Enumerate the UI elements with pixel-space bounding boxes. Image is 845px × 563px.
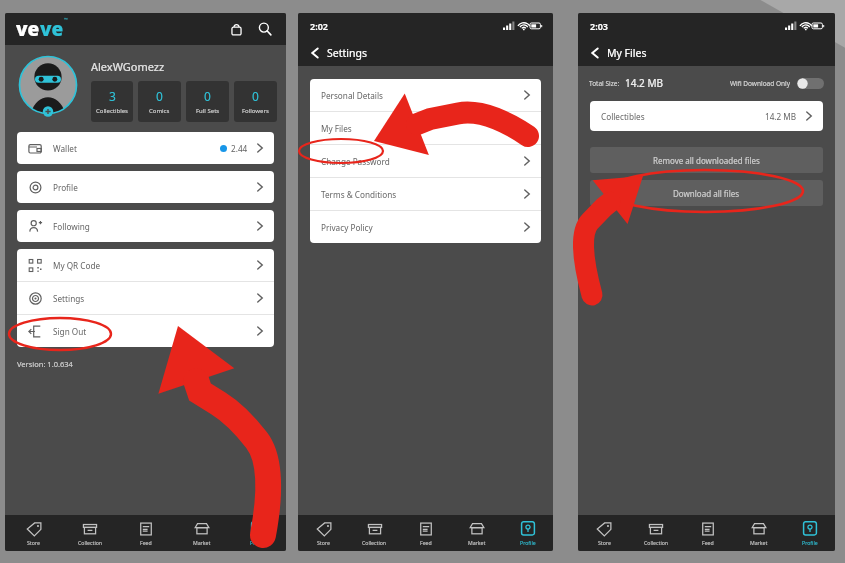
staticText: Total Size: xyxy=(589,79,620,88)
button[interactable]: Privacy Policy xyxy=(310,211,541,243)
staticText: Feed xyxy=(702,539,714,546)
staticText: Version: 1.0.634 xyxy=(17,359,73,369)
staticText: 3 xyxy=(109,88,116,104)
staticText: Profile xyxy=(250,539,266,546)
staticText: Settings xyxy=(327,46,367,60)
button[interactable]: 0 xyxy=(138,81,181,122)
staticText: Change Password xyxy=(321,156,390,167)
button[interactable]: Feed xyxy=(118,515,174,551)
staticText: Market xyxy=(193,539,211,546)
staticText: Feed xyxy=(420,539,432,546)
button[interactable]: Collection xyxy=(62,515,118,551)
staticText: My QR Code xyxy=(53,260,101,271)
staticText: Wallet xyxy=(53,143,77,154)
staticText: AlexWGomezz xyxy=(91,59,165,74)
button[interactable]: Search xyxy=(254,18,276,40)
button[interactable]: Back xyxy=(306,44,324,62)
staticText: Store xyxy=(27,539,40,546)
staticText: 0 xyxy=(156,88,163,104)
staticText: ™ xyxy=(64,16,68,22)
button[interactable]: Collection xyxy=(630,515,682,551)
button[interactable]: Profile xyxy=(502,515,553,551)
staticText: Profile xyxy=(53,182,78,193)
button[interactable]: Market xyxy=(174,515,230,551)
staticText: 2:02 xyxy=(310,20,328,32)
button[interactable]: Settings xyxy=(17,282,274,314)
button[interactable]: Following xyxy=(17,210,274,242)
staticText: Followers xyxy=(242,107,269,115)
button[interactable]: 0 xyxy=(186,81,229,122)
staticText: Market xyxy=(750,539,768,546)
button[interactable]: Market xyxy=(733,515,784,551)
staticText: Profile xyxy=(520,539,536,546)
staticText: Privacy Policy xyxy=(321,222,373,233)
staticText: 0 xyxy=(204,88,211,104)
staticText: Wifi Download Only xyxy=(730,79,791,88)
button[interactable]: Feed xyxy=(400,515,451,551)
button[interactable]: 3 xyxy=(91,81,133,122)
staticText: Terms & Conditions xyxy=(321,189,397,200)
staticText: Store xyxy=(598,539,611,546)
button[interactable]: Change Password xyxy=(310,145,541,177)
button[interactable] xyxy=(797,78,824,89)
staticText: ve xyxy=(40,16,64,42)
button[interactable]: Profile xyxy=(17,171,274,203)
button[interactable]: Download all files xyxy=(590,180,823,206)
staticText: Collection xyxy=(362,539,387,546)
staticText: Sign Out xyxy=(53,326,87,337)
button[interactable]: Collectibles xyxy=(590,101,823,131)
staticText: Settings xyxy=(53,293,85,304)
staticText: Store xyxy=(317,539,330,546)
staticText: Remove all downloaded files xyxy=(653,155,760,166)
button[interactable]: Store xyxy=(578,515,630,551)
staticText: 2:03 xyxy=(590,20,608,32)
staticText: Full Sets xyxy=(196,107,220,115)
staticText: Personal Details xyxy=(321,90,384,101)
button[interactable]: 0 xyxy=(234,81,277,122)
button[interactable]: Profile xyxy=(230,515,286,551)
button[interactable]: My QR Code xyxy=(17,249,274,281)
staticText: Collectibles xyxy=(96,107,128,115)
staticText: 14.2 MB xyxy=(765,111,797,122)
staticText: 14.2 MB xyxy=(625,76,664,90)
button[interactable]: Personal Details xyxy=(310,79,541,111)
staticText: ve xyxy=(16,16,40,42)
staticText: Following xyxy=(53,221,90,232)
staticText: Market xyxy=(468,539,486,546)
staticText: 0 xyxy=(252,88,259,104)
button[interactable]: Collection xyxy=(349,515,400,551)
button[interactable]: My Files xyxy=(310,112,541,144)
button[interactable]: Profile xyxy=(784,515,835,551)
staticText: 2.44 xyxy=(231,143,248,154)
staticText: Collection xyxy=(644,539,669,546)
staticText: Collection xyxy=(78,539,103,546)
button[interactable]: Sign Out xyxy=(17,315,274,347)
staticText: My Files xyxy=(321,123,352,134)
button[interactable]: Market xyxy=(451,515,502,551)
button[interactable]: Remove all downloaded files xyxy=(590,147,823,173)
button[interactable]: Terms & Conditions xyxy=(310,178,541,210)
staticText: Profile xyxy=(802,539,818,546)
staticText: Feed xyxy=(140,539,152,546)
staticText: My Files xyxy=(607,46,647,60)
button[interactable]: Store xyxy=(298,515,349,551)
button[interactable]: Feed xyxy=(682,515,733,551)
button[interactable]: Bag xyxy=(226,19,246,39)
staticText: Download all files xyxy=(673,188,740,199)
button[interactable]: Back xyxy=(586,44,604,62)
button[interactable]: Store xyxy=(5,515,62,551)
staticText: Collectibles xyxy=(601,111,645,122)
staticText: Comics xyxy=(149,107,170,115)
button[interactable]: Wallet xyxy=(17,132,274,164)
